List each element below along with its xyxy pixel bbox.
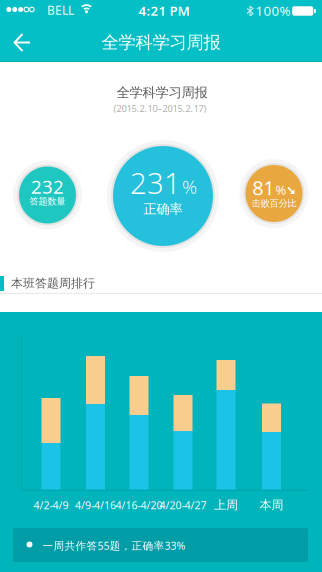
staticText: 4/9-4/16 [75, 498, 116, 512]
staticText: % [182, 174, 197, 199]
button[interactable] [0, 22, 44, 62]
staticText: 4:21 PM [138, 2, 189, 19]
staticText: 232 [31, 174, 64, 199]
staticText: 4/16-4/20 [115, 498, 162, 512]
staticText: 上周 [214, 498, 238, 512]
staticText: 本周 [259, 498, 283, 512]
staticText: 4/2-4/9 [33, 498, 68, 512]
staticText: 一周共作答55题，正确率33% [42, 538, 185, 553]
staticText: (2015.2.10–2015.2.17) [113, 102, 206, 115]
staticText: 本班答题周排行 [11, 276, 95, 291]
staticText: BELL [47, 2, 74, 18]
staticText: 答题数量 [29, 196, 65, 207]
staticText: 全学科学习周报 [116, 84, 207, 101]
staticText: 全学科学习周报 [101, 32, 220, 53]
staticText: % [275, 181, 286, 198]
staticText: 正确率 [143, 201, 182, 217]
staticText: 81 [252, 174, 274, 201]
staticText: 100% [255, 2, 290, 19]
staticText: 4/20-4/27 [159, 498, 206, 512]
staticText: 击败百分比 [251, 198, 296, 209]
staticText: 231 [130, 163, 181, 202]
